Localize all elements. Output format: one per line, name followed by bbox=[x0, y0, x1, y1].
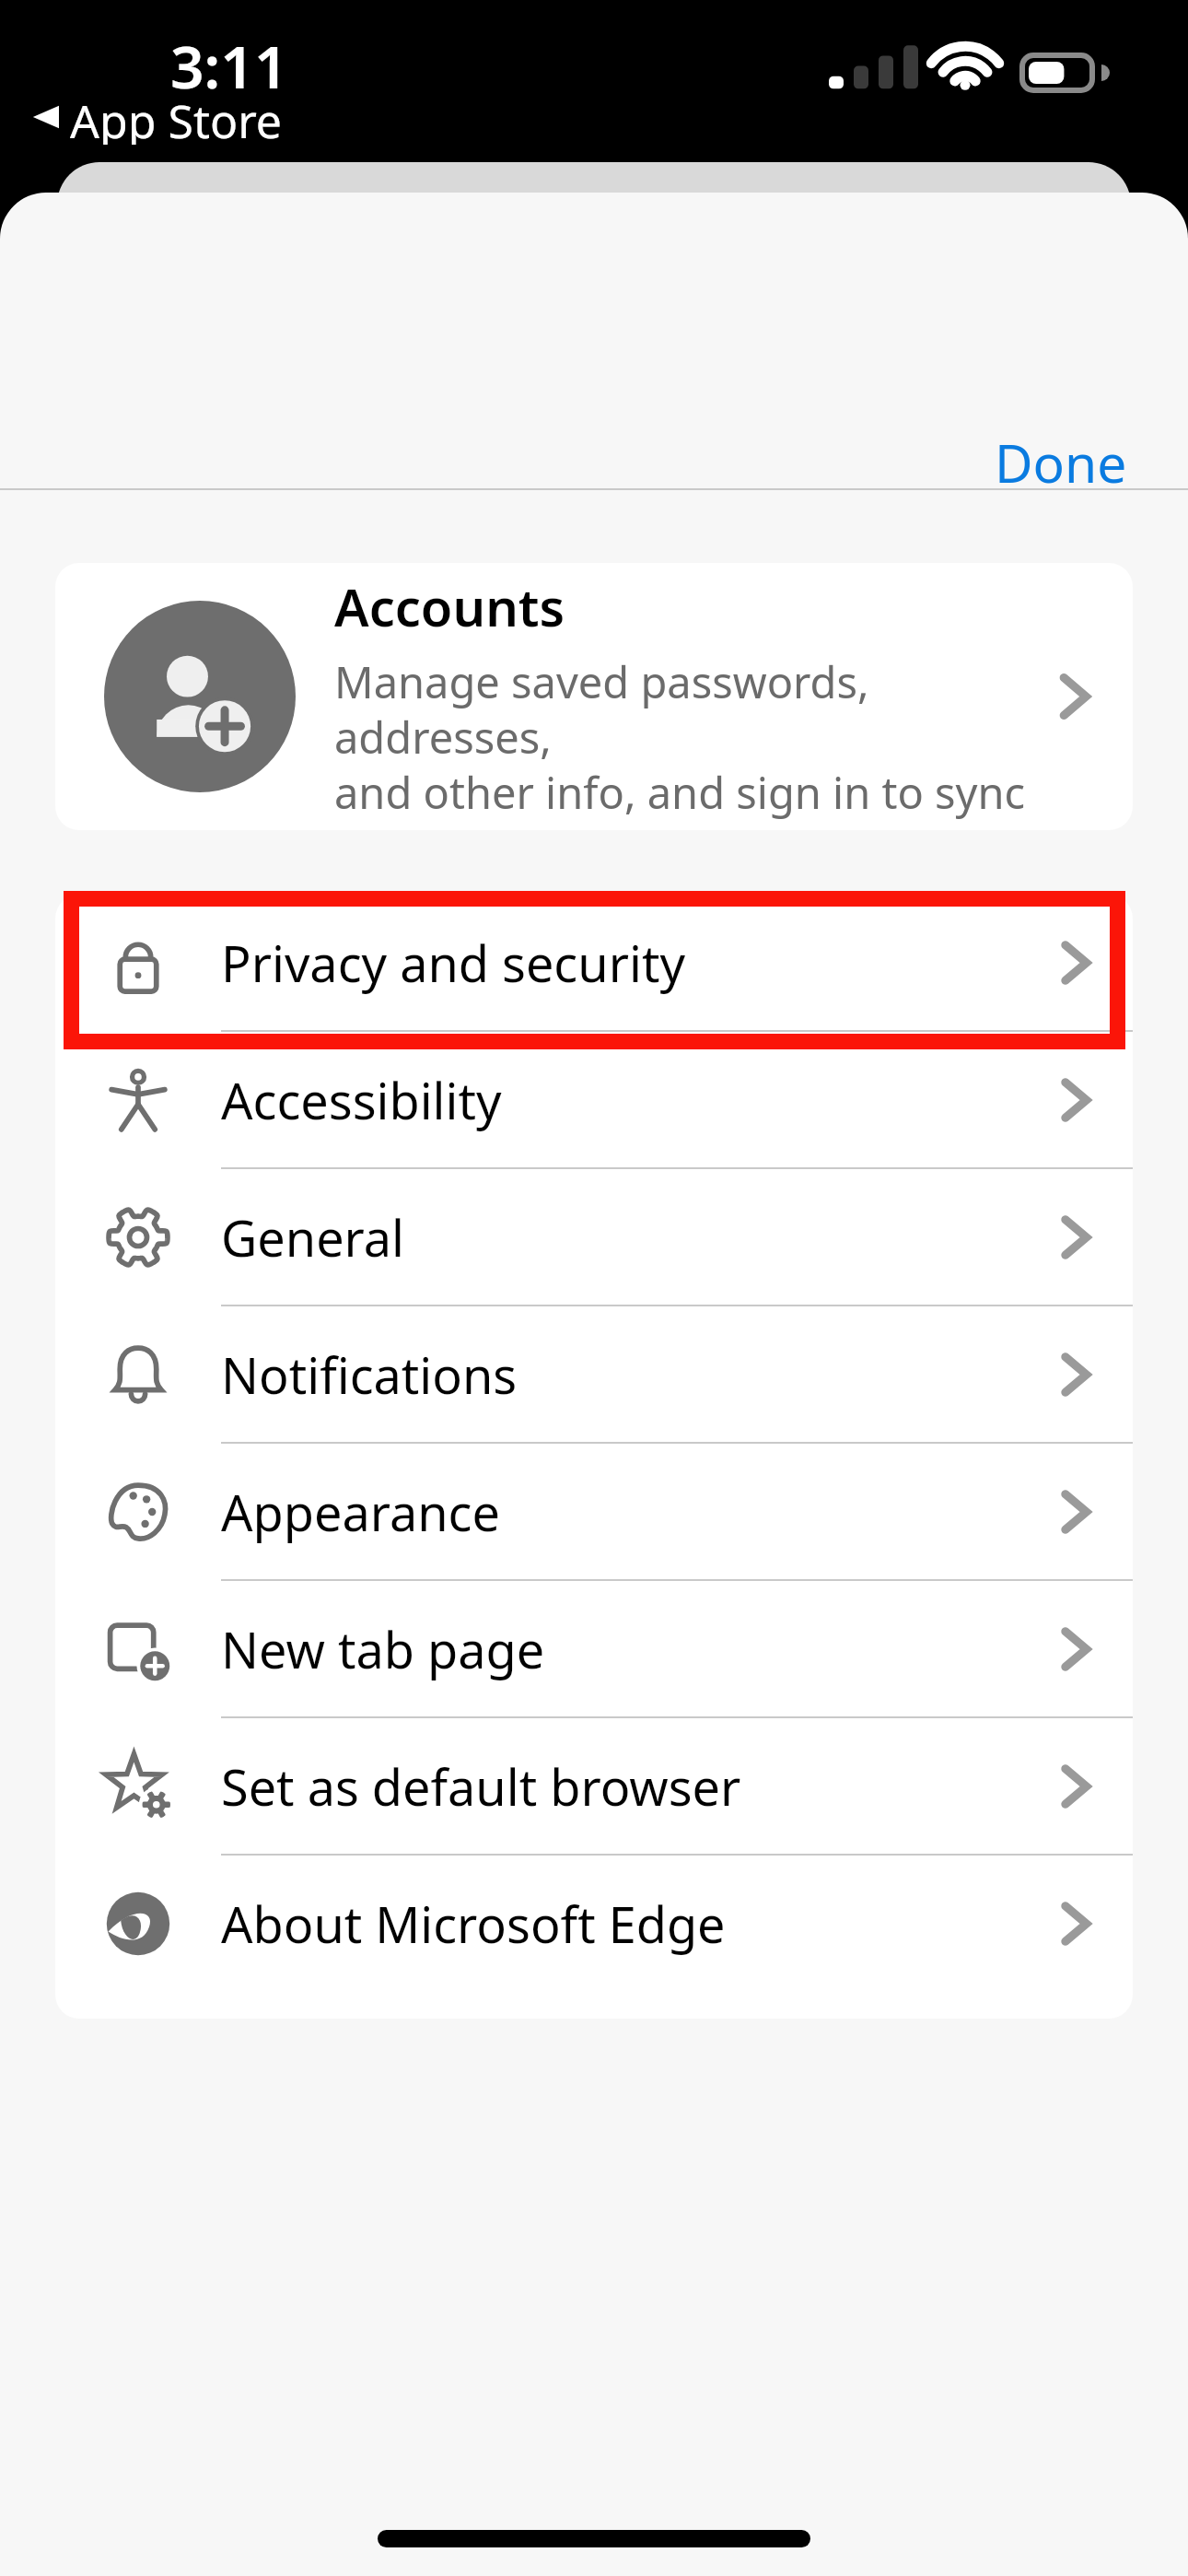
staticText: Accounts bbox=[334, 571, 565, 641]
other: Status icons bbox=[829, 44, 1105, 101]
button[interactable]: About Microsoft Edge bbox=[55, 1856, 1133, 1991]
button[interactable]: Privacy and security bbox=[55, 895, 1133, 1030]
other: Privacy and security highlighted bbox=[64, 891, 1125, 1049]
button[interactable]: Set as default browser bbox=[55, 1718, 1133, 1854]
staticText: Manage saved passwords, addresses, and o… bbox=[334, 652, 1057, 822]
button[interactable]: Notifications bbox=[55, 1306, 1133, 1442]
staticText: App Store bbox=[70, 89, 283, 145]
button[interactable]: App Store bbox=[31, 89, 283, 145]
staticText: Notifications bbox=[221, 1341, 518, 1409]
button[interactable]: Done bbox=[978, 416, 1144, 509]
staticText: Done bbox=[995, 427, 1127, 498]
staticText: Set as default browser bbox=[221, 1752, 741, 1821]
button[interactable]: General bbox=[55, 1169, 1133, 1305]
staticText: Settings bbox=[53, 541, 504, 694]
staticText: General bbox=[221, 1203, 405, 1271]
button[interactable]: New tab page bbox=[55, 1581, 1133, 1716]
staticText: About Microsoft Edge bbox=[221, 1890, 726, 1958]
button[interactable]: Accessibility bbox=[55, 1032, 1133, 1167]
button[interactable]: Appearance bbox=[55, 1444, 1133, 1579]
staticText: Appearance bbox=[221, 1478, 500, 1546]
button[interactable]: Accounts bbox=[55, 563, 1133, 830]
staticText: 3:11 bbox=[170, 26, 288, 106]
staticText: Privacy and security bbox=[221, 929, 685, 997]
staticText: Accessibility bbox=[221, 1066, 502, 1134]
staticText: New tab page bbox=[221, 1615, 545, 1683]
